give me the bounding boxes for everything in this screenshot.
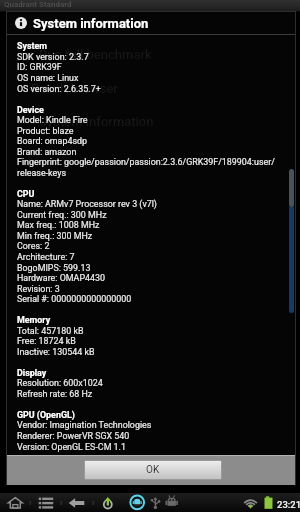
staticText: Memory (17, 315, 51, 325)
staticText: Inactive: 130544 kB (17, 347, 95, 357)
staticText: OK (146, 464, 160, 476)
staticText: Current freq.: 300 MHz (17, 210, 107, 220)
staticText: Min freq.: 300 MHz (17, 231, 93, 241)
button[interactable]: Back (64, 494, 88, 512)
staticText: OS version: 2.6.35.7+ (17, 84, 101, 94)
button[interactable]: USB connected (148, 494, 163, 512)
staticText: Architecture: 7 (17, 252, 75, 262)
staticText: Vendor: Imagination Technologies (17, 420, 152, 430)
button[interactable]: OK (85, 461, 221, 479)
staticText: release-keys (17, 168, 66, 178)
staticText: Display (17, 368, 47, 378)
staticText: Model: Kindle Fire (17, 115, 88, 125)
staticText: Revision: 3 (17, 284, 60, 294)
button[interactable]: Menu (34, 494, 58, 512)
staticText: Cores: 2 (17, 241, 50, 251)
staticText: SDK version: 2.3.7 (17, 52, 89, 62)
staticText: Resolution: 600x1024 (17, 378, 103, 388)
staticText: Hardware: OMAP4430 (17, 273, 105, 283)
staticText: Max freq.: 1008 MHz (17, 220, 100, 230)
button[interactable]: Notification (127, 492, 147, 512)
staticText: Version: OpenGL ES-CM 1.1 (17, 442, 126, 452)
staticText: Total: 457180 kB (17, 326, 84, 336)
staticText: Product: blaze (17, 126, 74, 136)
staticText: Brand: amazon (17, 147, 77, 157)
staticText: Result browser (31, 81, 118, 96)
staticText: Name: ARMv7 Processor rev 3 (v7l) (17, 199, 157, 209)
button[interactable]: Sync status (97, 494, 119, 512)
staticText: Refresh rate: 68 Hz (17, 389, 93, 399)
staticText: Free: 18724 kB (17, 336, 76, 346)
staticText: Board: omap4sdp (17, 136, 88, 146)
staticText: CPU (17, 189, 35, 199)
staticText: ID: GRK39F (17, 62, 62, 72)
staticText: Run full benchmark (39, 47, 152, 62)
staticText: Serial #: 0000000000000000 (17, 294, 132, 304)
button[interactable]: System notification (163, 494, 179, 512)
staticText: 23:21 (277, 499, 300, 510)
staticText: Device (17, 105, 44, 115)
staticText: System information (39, 114, 154, 129)
staticText: OS name: Linux (17, 73, 79, 83)
staticText: Fingerprint: google/passion/passion:2.3.… (17, 157, 275, 167)
staticText: System information (33, 16, 149, 31)
staticText: GPU (OpenGL) (17, 410, 75, 420)
staticText: Quadrant Standard (4, 0, 72, 9)
staticText: BogoMIPS: 599.13 (17, 263, 91, 273)
staticText: Renderer: PowerVR SGX 540 (17, 431, 130, 441)
staticText: System (17, 41, 48, 51)
button[interactable]: Home (4, 494, 26, 512)
